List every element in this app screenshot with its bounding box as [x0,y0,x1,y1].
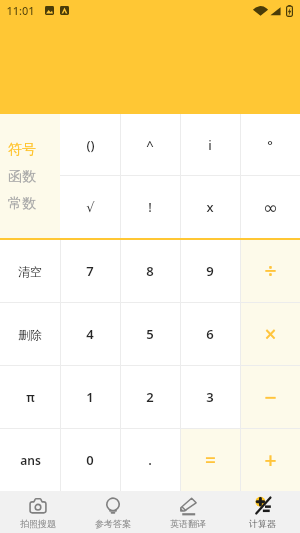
button[interactable]: 8 [120,240,180,302]
staticText: 7 [86,262,94,280]
staticText: − [264,383,277,412]
staticText: ans [20,452,41,468]
button[interactable]: ∞ [240,176,300,238]
button[interactable]: 4 [60,303,120,365]
staticText: 参考答案 [95,518,131,529]
button[interactable]: 5 [120,303,180,365]
staticText: 函数 [8,168,36,186]
staticText: 计算器 [249,518,276,529]
button[interactable]: 2 [120,366,180,428]
button[interactable]: 计算器 [225,491,300,533]
staticText: + [264,446,277,475]
staticText: 清空 [18,264,42,279]
button[interactable]: ! [120,176,180,238]
button[interactable]: 6 [180,303,240,365]
staticText: 1 [86,388,94,406]
staticText: 英语翻译 [170,518,206,529]
button[interactable]: 9 [180,240,240,302]
staticText: x [206,198,214,216]
button[interactable]: 函数 [0,163,60,190]
button[interactable]: 拍照搜题 [0,491,75,533]
button[interactable]: 符号 [0,136,60,163]
staticText: 符号 [8,141,36,159]
staticText: 6 [206,325,214,343]
button[interactable]: i [180,114,240,175]
button[interactable]: 清空 [0,240,60,302]
staticText: ÷ [264,257,277,286]
button[interactable]: + [240,429,300,491]
staticText: 11:01 [6,3,35,18]
staticText: i [208,136,212,154]
staticText: √ [86,200,95,215]
staticText: 3 [206,388,214,406]
staticText: = [205,447,216,473]
staticText: 删除 [18,327,42,342]
button[interactable]: 英语翻译 [150,491,225,533]
staticText: ° [267,136,273,154]
button[interactable]: − [240,366,300,428]
staticText: 9 [206,262,214,280]
staticText: 常数 [8,195,36,213]
button[interactable]: 常数 [0,190,60,217]
staticText: ∞ [263,197,278,218]
button[interactable]: × [240,303,300,365]
button[interactable]: . [120,429,180,491]
staticText: 0 [86,451,94,469]
button[interactable]: 0 [60,429,120,491]
button[interactable]: 7 [60,240,120,302]
staticText: ^ [146,136,154,154]
button[interactable]: π [0,366,60,428]
button[interactable]: 3 [180,366,240,428]
button[interactable]: ° [240,114,300,175]
staticText: () [86,136,95,154]
button[interactable]: () [60,114,120,175]
button[interactable]: 1 [60,366,120,428]
button[interactable]: ÷ [240,240,300,302]
staticText: 2 [146,388,154,406]
staticText: π [26,389,35,405]
staticText: 5 [146,325,154,343]
staticText: 8 [146,262,154,280]
button[interactable]: ans [0,429,60,491]
staticText: ! [148,198,152,216]
staticText: × [264,320,277,349]
staticText: 4 [86,325,94,343]
button[interactable]: 参考答案 [75,491,150,533]
staticText: 拍照搜题 [20,518,56,529]
staticText: . [148,451,152,469]
button[interactable]: ^ [120,114,180,175]
button[interactable]: 删除 [0,303,60,365]
button[interactable]: √ [60,176,120,238]
button[interactable]: = [180,429,240,491]
button[interactable]: x [180,176,240,238]
